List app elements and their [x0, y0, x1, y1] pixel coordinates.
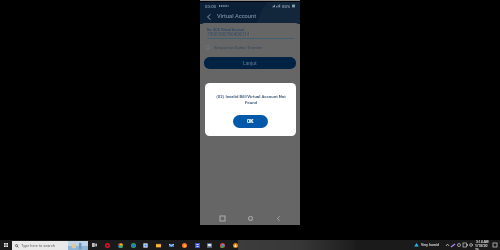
staticText: Simpan ke Daftar Transfer [214, 45, 263, 50]
staticText: 3:14 AM [476, 240, 489, 244]
button[interactable]: Lanjut [204, 57, 296, 69]
button[interactable]: Firefox [179, 240, 189, 250]
button[interactable]: Back [203, 11, 214, 22]
button[interactable]: Opera [102, 240, 112, 250]
button[interactable]: File Explorer [153, 240, 163, 250]
button[interactable]: Type here to search [12, 241, 88, 250]
button[interactable]: Chrome [128, 240, 138, 250]
staticText: OK [247, 119, 254, 125]
staticText: 7000108786408114 [207, 32, 250, 38]
staticText: 1/18/2026 [475, 244, 489, 250]
button[interactable]: Start [0, 240, 11, 250]
staticText: Type here to search [21, 243, 55, 248]
button[interactable]: App [230, 240, 240, 250]
button[interactable]: Notifications [490, 240, 499, 250]
button[interactable]: Photos [115, 240, 125, 250]
button[interactable]: App [204, 240, 214, 250]
button[interactable]: Home [245, 213, 255, 223]
button[interactable]: Recent apps [217, 213, 227, 223]
button[interactable]: Sublime [192, 240, 202, 250]
button[interactable]: Google [217, 240, 227, 250]
button[interactable]: Microsoft Store [140, 240, 150, 250]
staticText: Virtual Account [217, 13, 256, 20]
staticText: Very humid [421, 243, 439, 247]
button[interactable]: OK [233, 115, 268, 128]
staticText: Lanjut [243, 60, 257, 66]
staticText: No. BCA Virtual Account [207, 28, 245, 32]
button[interactable]: Show hidden icons [444, 240, 450, 250]
staticText: 80% [282, 4, 291, 9]
button[interactable]: Simpan ke Daftar Transfer [205, 44, 263, 51]
button[interactable]: Task view [89, 240, 99, 250]
button[interactable]: Mail [166, 240, 176, 250]
staticText: 03:05 [205, 4, 217, 9]
staticText: (02) Invalid Bill/Virtual Account Not Fo… [214, 94, 288, 105]
button[interactable]: Back [273, 213, 283, 223]
button[interactable]: Clock [475, 240, 489, 250]
